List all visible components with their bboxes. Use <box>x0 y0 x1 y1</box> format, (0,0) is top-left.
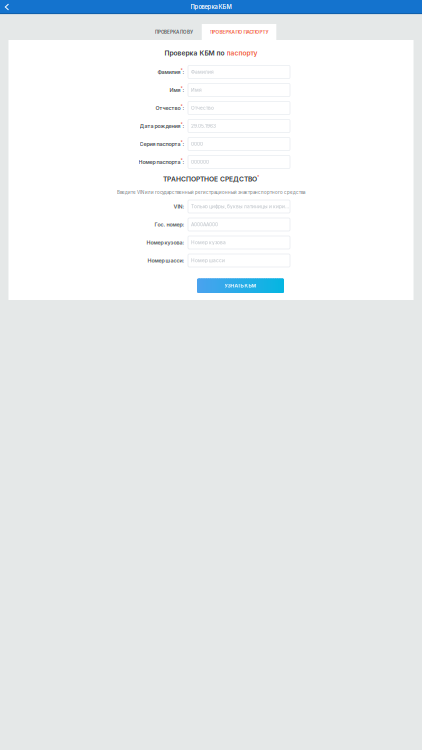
staticText: 000000 <box>191 159 209 165</box>
staticText: Имя <box>169 87 180 93</box>
staticText: УЗНАТЬ КБМ <box>224 283 256 289</box>
button[interactable]: Back <box>0 0 14 14</box>
button[interactable]: УЗНАТЬ КБМ <box>197 278 284 293</box>
staticText: Введите VIN или государственный регистра… <box>117 190 305 195</box>
staticText: Имя <box>191 87 202 93</box>
staticText: : <box>182 87 184 93</box>
staticText: * <box>180 86 182 91</box>
staticText: Номер кузова <box>146 239 182 246</box>
staticText: ПРОВЕРКА ПО ВУ <box>155 29 193 35</box>
staticText: : <box>182 105 184 111</box>
staticText: : <box>182 203 184 210</box>
staticText: A000AA000 <box>191 222 218 227</box>
staticText: * <box>180 158 182 163</box>
staticText: 29.05.1963 <box>191 123 216 129</box>
staticText: Проверка КБМ <box>190 3 231 10</box>
staticText: ПРОВЕРКА ПО ПАСПОРТУ <box>210 29 269 35</box>
staticText: ТРАНСПОРТНОЕ СРЕДСТВО <box>163 175 257 183</box>
staticText: Фамилия <box>191 69 214 75</box>
staticText: * <box>180 140 182 145</box>
staticText: Серия паспорта <box>139 141 180 147</box>
staticText: * <box>180 104 182 109</box>
button[interactable]: ПРОВЕРКА ПО ПАСПОРТУ <box>202 24 276 40</box>
staticText: Номер паспорта <box>138 159 180 165</box>
staticText: Дата рождения <box>139 123 180 129</box>
staticText: * <box>257 175 259 180</box>
staticText: : <box>182 123 184 129</box>
staticText: Только цифры, буквы латиницы и кириллицы <box>191 204 290 209</box>
staticText: : <box>182 257 184 264</box>
staticText: * <box>180 68 182 73</box>
staticText: : <box>182 141 184 147</box>
staticText: : <box>182 159 184 165</box>
staticText: Отчество <box>191 105 214 111</box>
staticText: паспорту <box>226 49 257 57</box>
staticText: Отчество <box>155 105 180 111</box>
staticText: Номер кузова <box>191 240 226 245</box>
staticText: 0000 <box>191 141 203 147</box>
button[interactable]: ПРОВЕРКА ПО ВУ <box>147 24 201 40</box>
staticText: VIN <box>173 203 182 210</box>
staticText: Проверка КБМ по <box>164 49 226 57</box>
staticText: * <box>180 122 182 127</box>
staticText: : <box>182 221 184 228</box>
staticText: Номер шасси <box>147 257 182 264</box>
staticText: Номер шасси <box>191 258 225 263</box>
staticText: Гос. номер <box>154 221 182 228</box>
staticText: : <box>182 239 184 246</box>
staticText: Фамилия <box>157 69 180 75</box>
staticText: : <box>182 69 184 75</box>
